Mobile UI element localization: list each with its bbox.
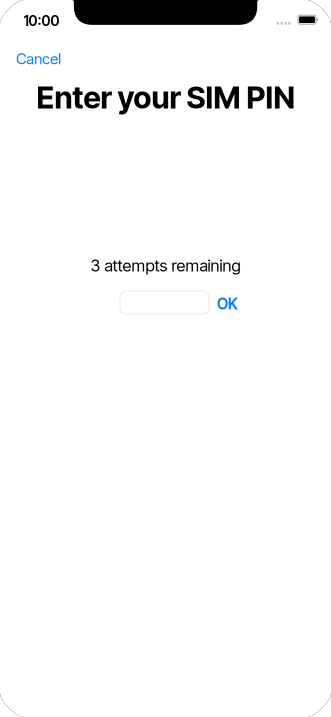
staticText: Cancel [16, 50, 61, 68]
staticText: 3 attempts remaining [90, 256, 240, 275]
button[interactable]: SIM PIN [120, 291, 209, 314]
staticText: Enter your SIM PIN [36, 79, 294, 116]
button[interactable]: OK [217, 292, 238, 315]
staticText: OK [217, 295, 238, 313]
button[interactable]: Cancel [16, 39, 61, 78]
staticText: 10:00 [23, 12, 59, 29]
